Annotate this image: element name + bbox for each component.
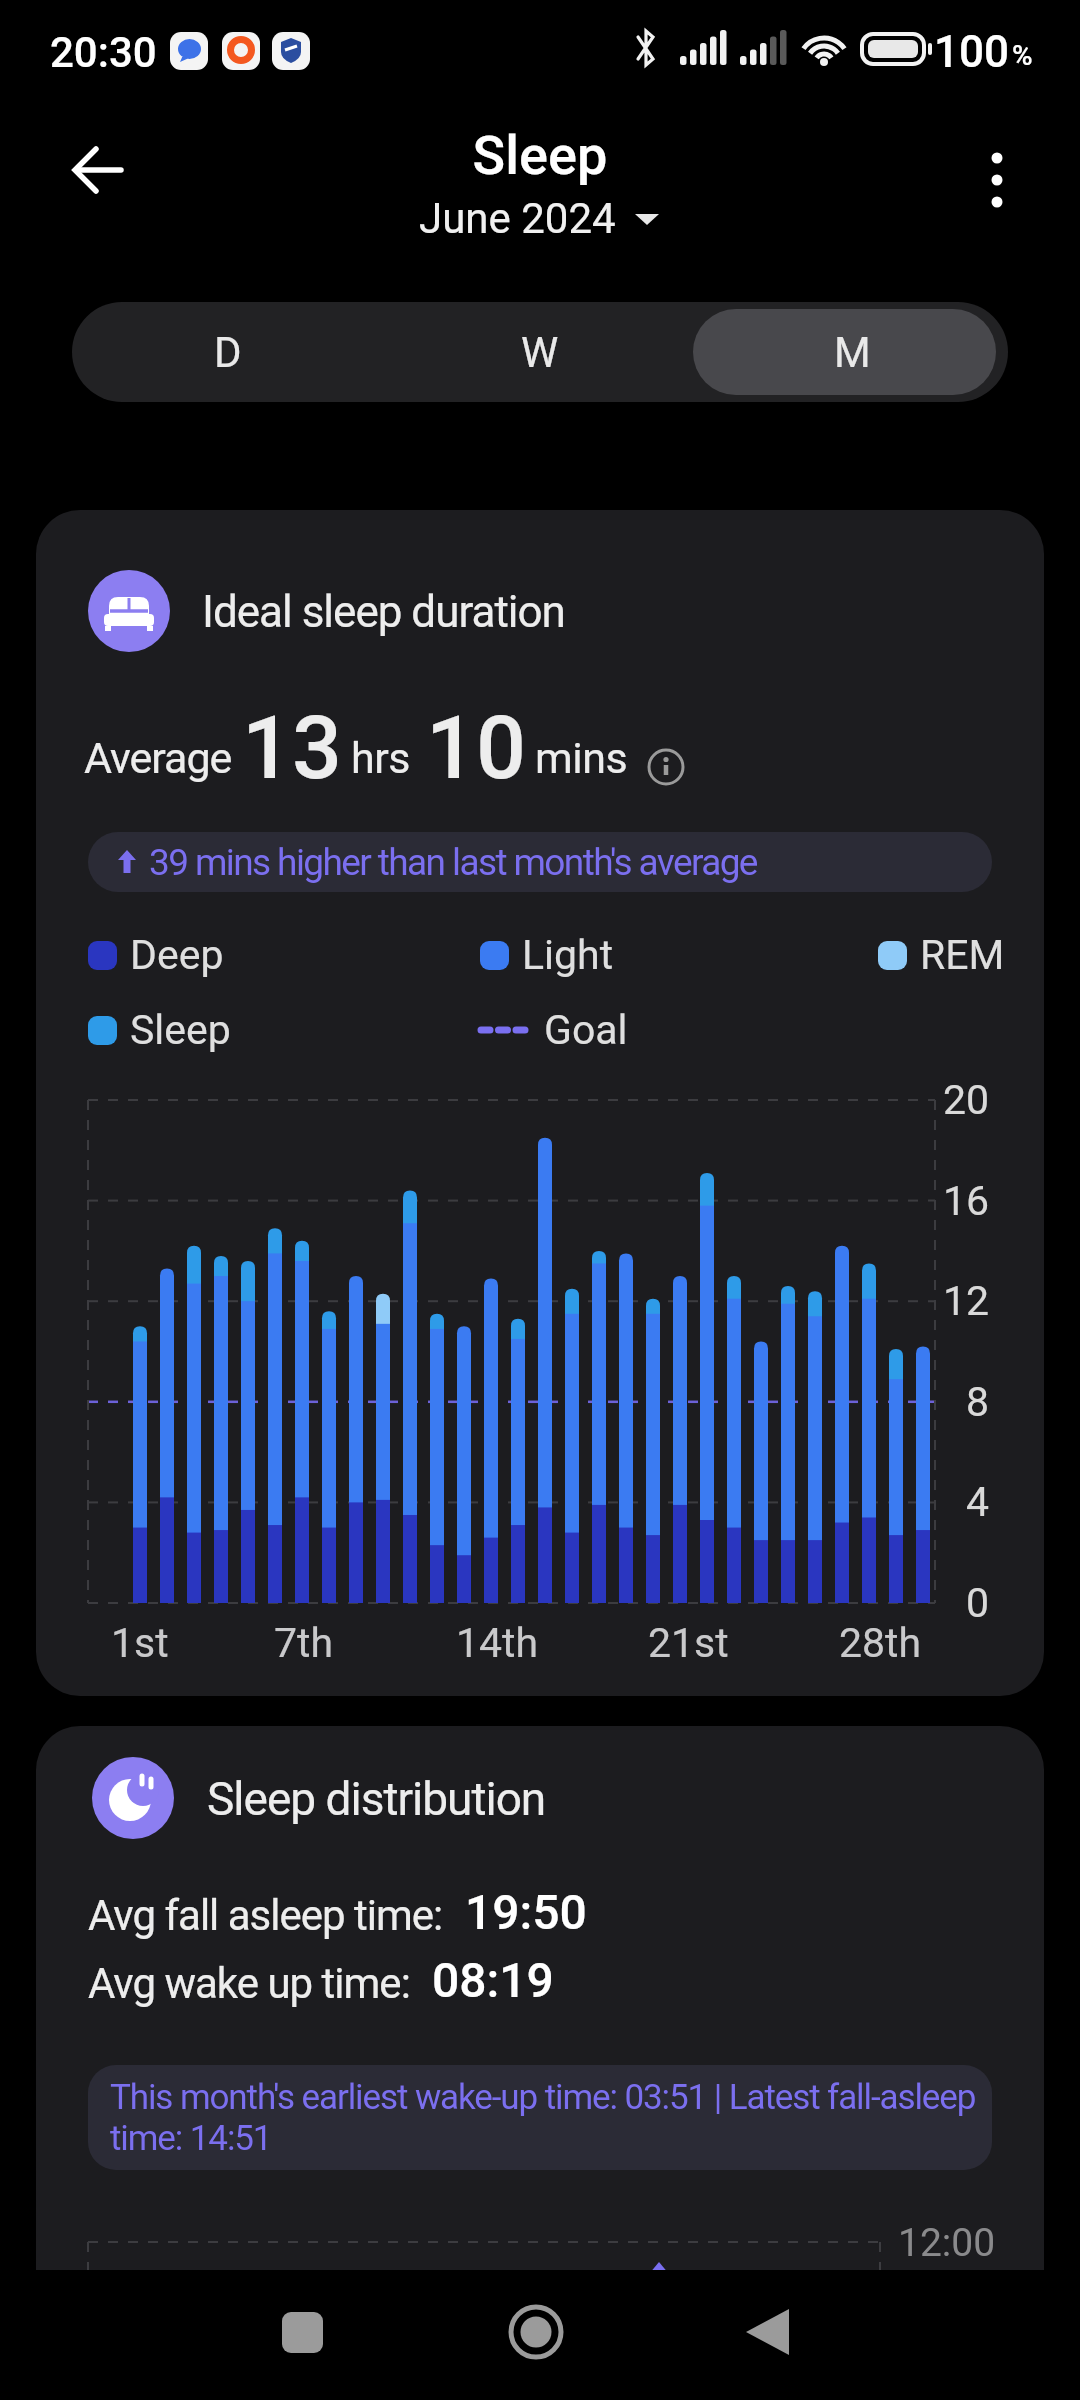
staticText: 28th <box>839 1619 922 1667</box>
staticText: 14th <box>456 1619 539 1667</box>
staticText: 20:30 <box>50 28 157 77</box>
staticText: 1st <box>111 1619 169 1667</box>
staticText: 100 <box>934 26 1010 78</box>
staticText: Goal <box>544 1006 628 1054</box>
button[interactable] <box>252 2282 352 2382</box>
staticText: mins <box>535 733 628 783</box>
staticText: 13 <box>242 696 343 799</box>
staticText: 12 <box>943 1277 990 1325</box>
staticText: Avg fall asleep time: <box>88 1891 443 1940</box>
button[interactable] <box>646 747 686 787</box>
staticText: 39 mins higher than last month's average <box>149 841 757 884</box>
staticText: W <box>521 328 559 377</box>
staticText: 08:19 <box>432 1952 554 2008</box>
staticText: Sleep <box>0 124 1080 187</box>
staticText: Sleep <box>130 1006 231 1054</box>
staticText: 0 <box>966 1579 990 1627</box>
staticText: 12:00 <box>898 2220 996 2266</box>
button[interactable]: D <box>72 302 384 402</box>
staticText: Avg wake up time: <box>88 1959 410 2008</box>
button[interactable]: M <box>696 302 1008 402</box>
button[interactable]: W <box>384 302 696 402</box>
staticText: 8 <box>966 1378 990 1426</box>
staticText: Ideal sleep duration <box>202 586 565 638</box>
staticText: 7th <box>274 1619 334 1667</box>
staticText: REM <box>920 931 1005 979</box>
staticText: This month's earliest wake-up time: 03:5… <box>110 2077 990 2158</box>
button[interactable] <box>55 130 139 214</box>
button[interactable] <box>956 136 1036 216</box>
staticText: 20 <box>943 1076 990 1124</box>
button[interactable]: June 2024 <box>419 194 661 243</box>
button[interactable] <box>718 2282 818 2382</box>
staticText: Light <box>522 931 614 979</box>
staticText: Sleep distribution <box>207 1772 546 1826</box>
staticText: 21st <box>648 1619 729 1667</box>
staticText: June 2024 <box>419 194 616 243</box>
staticText: D <box>214 328 242 377</box>
staticText: 19:50 <box>465 1884 587 1940</box>
staticText: Deep <box>130 931 224 979</box>
staticText: hrs <box>351 733 410 783</box>
staticText: M <box>834 328 871 377</box>
staticText: 10 <box>426 696 527 799</box>
staticText: 16 <box>943 1177 990 1225</box>
button[interactable] <box>486 2282 586 2382</box>
staticText: Average <box>84 733 232 783</box>
staticText: % <box>1012 39 1033 72</box>
staticText: 4 <box>966 1478 990 1526</box>
